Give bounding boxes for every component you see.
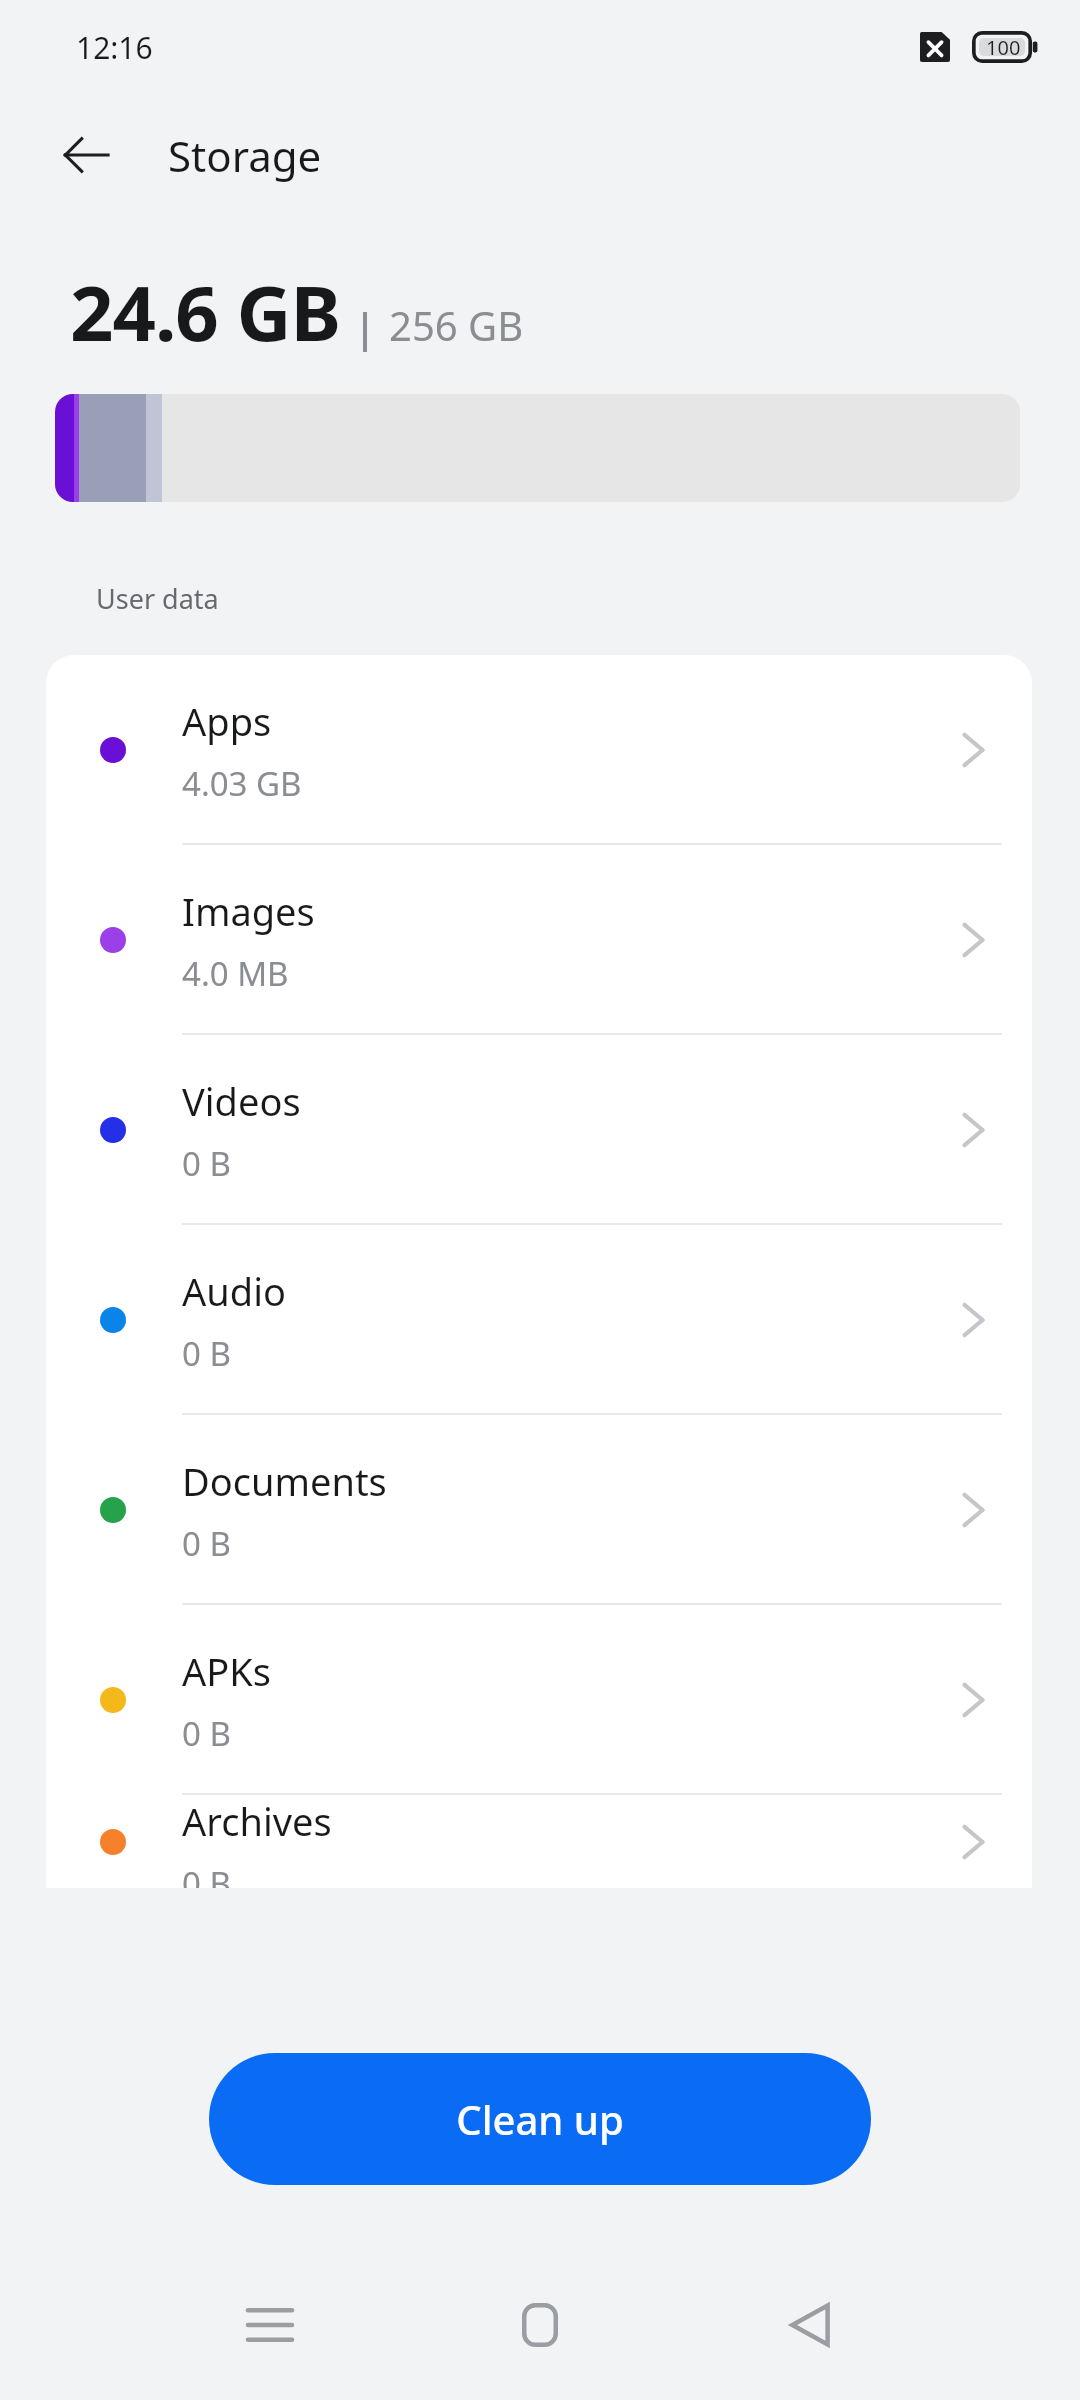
staticText: 0 B xyxy=(182,1331,231,1376)
staticText: 4.03 GB xyxy=(182,761,302,806)
button[interactable]: Videos xyxy=(46,1035,1032,1225)
staticText: 0 B xyxy=(182,1861,231,1888)
staticText: 100 xyxy=(986,34,1021,61)
button[interactable]: Home xyxy=(490,2285,590,2365)
staticText: 0 B xyxy=(182,1711,231,1756)
staticText: Audio xyxy=(182,1265,286,1317)
staticText: Archives xyxy=(182,1795,332,1847)
button[interactable]: Back xyxy=(760,2285,860,2365)
button[interactable]: Images xyxy=(46,845,1032,1035)
staticText: APKs xyxy=(182,1645,271,1697)
button[interactable]: Documents xyxy=(46,1415,1032,1605)
button[interactable]: APKs xyxy=(46,1605,1032,1795)
staticText: Storage xyxy=(168,127,322,184)
staticText: Clean up xyxy=(456,2092,624,2146)
button[interactable]: Apps xyxy=(46,655,1032,845)
staticText: 0 B xyxy=(182,1141,231,1186)
staticText: 256 GB xyxy=(389,298,524,352)
staticText: Images xyxy=(182,885,315,937)
staticText: 4.0 MB xyxy=(182,951,289,996)
button[interactable]: Audio xyxy=(46,1225,1032,1415)
button[interactable]: Back xyxy=(38,107,134,203)
staticText: Documents xyxy=(182,1455,387,1507)
staticText: Apps xyxy=(182,695,272,747)
staticText: 24.6 GB xyxy=(70,260,341,364)
staticText: 12:16 xyxy=(76,27,153,68)
button[interactable]: Recent apps xyxy=(220,2285,320,2365)
staticText: 0 B xyxy=(182,1521,231,1566)
staticText: Videos xyxy=(182,1075,301,1127)
button[interactable]: Archives xyxy=(46,1795,1032,1888)
button[interactable]: Clean up xyxy=(209,2053,871,2185)
staticText: User data xyxy=(96,580,219,617)
